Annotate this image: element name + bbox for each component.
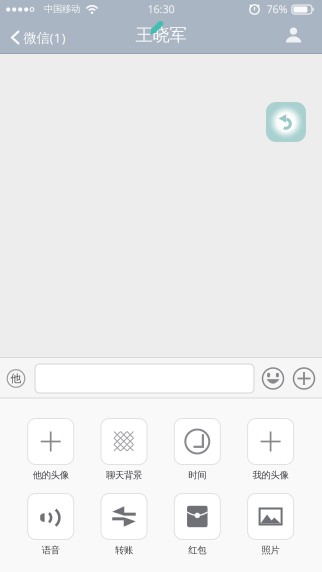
- staticText: 转账: [115, 544, 133, 556]
- staticText: 我的头像: [253, 469, 289, 481]
- staticText: 照片: [262, 544, 280, 556]
- staticText: 聊天背景: [106, 469, 142, 481]
- staticText: 微信(1): [23, 29, 65, 46]
- button[interactable]: 时间: [174, 418, 220, 481]
- button[interactable]: 微信(1): [10, 29, 65, 46]
- button[interactable]: 聊天背景: [101, 418, 147, 481]
- staticText: 76%: [266, 2, 287, 16]
- button[interactable]: 更多: [293, 367, 315, 389]
- button[interactable]: 我的头像: [248, 418, 294, 481]
- button[interactable]: 王晓军: [135, 24, 186, 46]
- button[interactable]: 他的头像: [28, 418, 74, 481]
- staticText: 红包: [188, 544, 206, 556]
- staticText: 王晓军: [135, 24, 186, 46]
- staticText: 他: [10, 372, 21, 385]
- button[interactable]: 撤销: [266, 102, 306, 142]
- button[interactable]: 联系人资料: [285, 27, 301, 43]
- staticText: 语音: [42, 544, 60, 556]
- button[interactable]: 表情: [262, 367, 284, 389]
- button[interactable]: 语音: [28, 493, 74, 556]
- button[interactable]: 切换说话人: [7, 370, 25, 387]
- button[interactable]: 转账: [101, 493, 147, 556]
- staticText: 中国移动: [44, 3, 80, 15]
- button[interactable]: 红包: [174, 493, 220, 556]
- staticText: 他的头像: [33, 469, 69, 481]
- staticText: 时间: [188, 469, 206, 481]
- staticText: 16:30: [147, 2, 174, 16]
- button[interactable]: 照片: [248, 493, 294, 556]
